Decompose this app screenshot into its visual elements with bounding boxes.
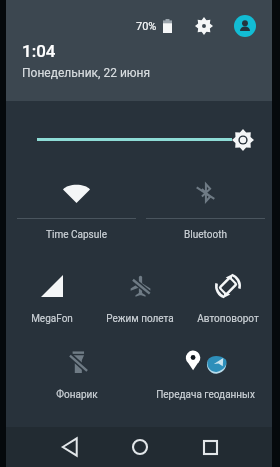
button[interactable]: Передача геоданных <box>141 347 270 401</box>
button[interactable]: Settings <box>192 14 216 38</box>
staticText: Автоповорот <box>197 313 259 325</box>
button[interactable]: MegaFon <box>7 271 96 325</box>
button[interactable]: Режим полета <box>96 271 184 325</box>
button[interactable]: Recent apps <box>192 429 228 465</box>
button[interactable]: Back <box>52 429 88 465</box>
staticText: Time Capsule <box>46 229 107 241</box>
button[interactable]: Time Capsule <box>12 177 141 241</box>
staticText: MegaFon <box>31 313 73 325</box>
staticText: Понедельник, 22 июня <box>22 66 151 80</box>
button[interactable]: Home <box>122 429 158 465</box>
staticText: Bluetooth <box>184 229 227 241</box>
button[interactable]: Фонарик <box>12 347 141 401</box>
staticText: Режим полета <box>106 313 174 325</box>
button[interactable]: Автоповорот <box>184 271 272 325</box>
staticText: Фонарик <box>56 389 98 401</box>
button[interactable]: Switch user <box>234 15 256 37</box>
staticText: 1:04 <box>22 41 56 61</box>
button[interactable]: Bluetooth <box>141 177 270 241</box>
staticText: Передача геоданных <box>156 389 255 401</box>
staticText: 70% <box>136 20 157 33</box>
button[interactable]: Brightness <box>6 126 272 153</box>
